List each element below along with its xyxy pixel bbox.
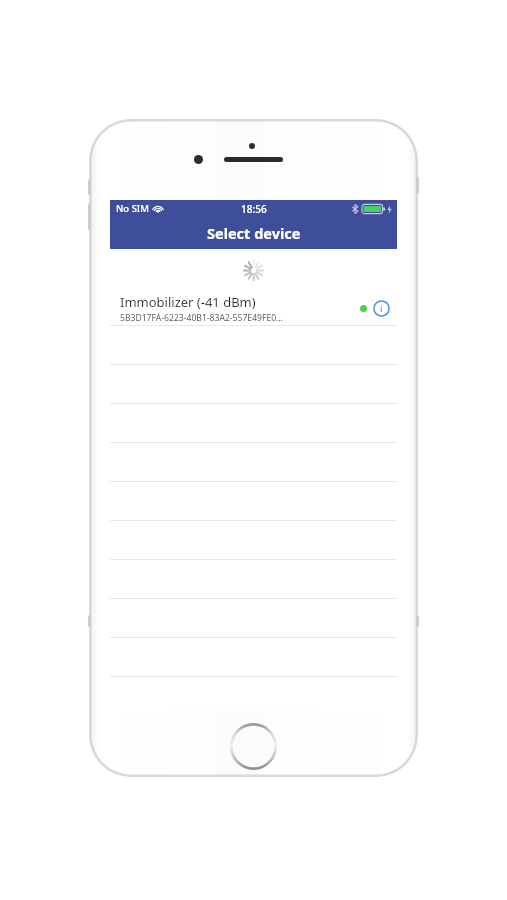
button[interactable]: Immobilizer (-41 dBm) xyxy=(110,292,397,325)
staticText: Select device xyxy=(207,223,301,243)
button[interactable]: Device info xyxy=(373,300,390,317)
staticText: 18:56 xyxy=(241,202,267,216)
staticText: 5B3D17FA-6223-40B1-83A2-557E49FE0… xyxy=(120,312,283,324)
staticText: i xyxy=(380,302,383,315)
button[interactable]: Select device xyxy=(110,217,397,249)
staticText: Immobilizer (-41 dBm) xyxy=(120,293,256,311)
staticText: No SIM xyxy=(116,202,149,215)
